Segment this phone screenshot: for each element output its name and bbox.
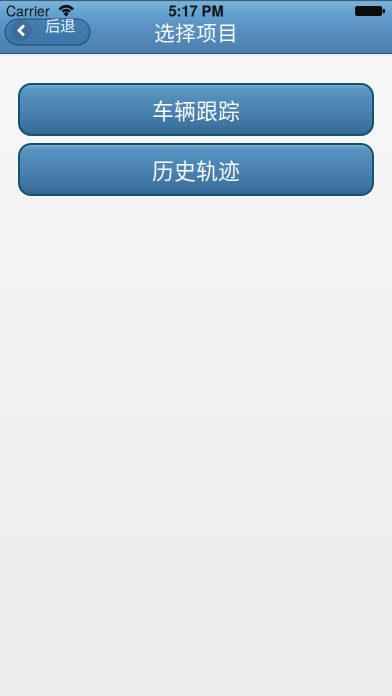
staticText: Carrier bbox=[6, 0, 50, 20]
staticText: 历史轨迹 bbox=[152, 154, 240, 185]
staticText: 后退 bbox=[45, 13, 75, 36]
button[interactable]: 历史轨迹 bbox=[19, 144, 373, 195]
button[interactable]: 后退 bbox=[5, 19, 90, 45]
staticText: 选择项目 bbox=[154, 17, 238, 47]
staticText: 车辆跟踪 bbox=[152, 94, 240, 125]
button[interactable]: 车辆跟踪 bbox=[19, 84, 373, 135]
staticText: 5:17 PM bbox=[168, 0, 223, 21]
